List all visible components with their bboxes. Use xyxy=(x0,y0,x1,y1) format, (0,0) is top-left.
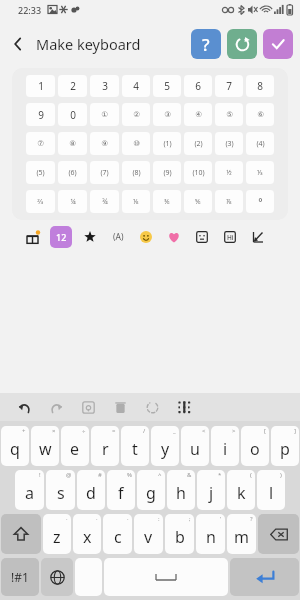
button[interactable]: × xyxy=(31,426,59,466)
button[interactable]: (4) xyxy=(246,132,274,155)
button[interactable]: : xyxy=(134,514,163,554)
button[interactable]: ③ xyxy=(153,103,181,126)
button[interactable]: · xyxy=(43,514,71,554)
button[interactable]: Lock xyxy=(78,397,98,417)
button[interactable]: ! xyxy=(15,470,44,510)
button[interactable]: [ xyxy=(241,426,269,466)
button[interactable]: (5) xyxy=(26,161,55,184)
button[interactable]: 4 xyxy=(122,75,150,97)
button[interactable]: 12 xyxy=(50,226,72,248)
button[interactable]: / xyxy=(121,426,149,466)
button[interactable]: 9 xyxy=(26,103,55,126)
button[interactable]: 7 xyxy=(215,75,243,97)
button[interactable]: · xyxy=(73,514,101,554)
button[interactable]: Redo xyxy=(46,397,66,417)
staticText: ° xyxy=(258,195,263,209)
button[interactable]: ④ xyxy=(184,103,212,126)
button[interactable]: Enter xyxy=(230,558,299,596)
button[interactable]: ⑦ xyxy=(26,132,55,155)
button[interactable]: (10) xyxy=(184,161,212,184)
button[interactable]: Delete xyxy=(110,397,130,417)
button[interactable]: ⅜ xyxy=(153,190,181,213)
button[interactable]: ; xyxy=(165,514,194,554)
button[interactable]: (1) xyxy=(153,132,181,155)
button[interactable]: % xyxy=(107,470,135,510)
button[interactable]: ) xyxy=(257,470,285,510)
staticText: ( xyxy=(250,471,252,479)
button[interactable]: 5 xyxy=(153,75,181,97)
button[interactable]: (6) xyxy=(58,161,87,184)
button[interactable]: ⅓ xyxy=(246,161,274,184)
button[interactable]: Favorites xyxy=(80,227,100,247)
button[interactable]: Text shortcuts xyxy=(220,227,240,247)
button[interactable]: Language xyxy=(41,558,73,596)
button[interactable]: 3 xyxy=(90,75,119,97)
button[interactable]: Emoji xyxy=(136,227,156,247)
button[interactable]: * xyxy=(197,470,225,510)
button[interactable]: ② xyxy=(122,103,150,126)
button[interactable]: = xyxy=(91,426,119,466)
button[interactable]: Backspace xyxy=(258,514,299,554)
button[interactable]: Kaomoji xyxy=(192,227,212,247)
button[interactable]: (2) xyxy=(184,132,212,155)
button[interactable]: Symbols xyxy=(248,227,268,247)
button[interactable]: ¼ xyxy=(58,190,87,213)
button[interactable]: 1 xyxy=(26,75,55,97)
button[interactable]: ° xyxy=(246,190,274,213)
button[interactable]: _ xyxy=(151,426,179,466)
button[interactable]: Reset xyxy=(227,29,257,59)
button[interactable]: (9) xyxy=(153,161,181,184)
button[interactable]: ' xyxy=(196,514,225,554)
button[interactable]: (8) xyxy=(122,161,150,184)
button[interactable]: ? xyxy=(227,514,256,554)
button[interactable]: @ xyxy=(46,470,75,510)
button[interactable]: (7) xyxy=(90,161,119,184)
button[interactable]: Shift xyxy=(1,514,41,554)
staticText: ! xyxy=(39,471,41,479)
button[interactable]: ⅝ xyxy=(184,190,212,213)
button[interactable]: ¾ xyxy=(90,190,119,213)
button[interactable]: ( xyxy=(227,470,255,510)
button[interactable]: Hearts xyxy=(164,227,184,247)
button[interactable]: Letters xyxy=(108,227,128,247)
button[interactable]: ⑨ xyxy=(90,132,119,155)
button[interactable]: Keypad xyxy=(174,397,194,417)
button[interactable]: Done xyxy=(263,29,293,59)
button[interactable]: + xyxy=(1,426,29,466)
button[interactable]: (3) xyxy=(215,132,243,155)
button[interactable]: ⅛ xyxy=(122,190,150,213)
staticText: ÷ xyxy=(82,427,86,435)
button[interactable]: ⑥ xyxy=(246,103,274,126)
button[interactable]: 2 xyxy=(58,75,87,97)
button[interactable]: Back xyxy=(0,26,36,62)
button[interactable]: 6 xyxy=(184,75,212,97)
button[interactable]: Undo xyxy=(14,397,34,417)
button[interactable]: 8 xyxy=(246,75,274,97)
button[interactable]: ⅔ xyxy=(26,190,55,213)
button[interactable]: < xyxy=(181,426,209,466)
button[interactable] xyxy=(75,558,102,596)
button[interactable]: Help xyxy=(191,29,221,59)
button[interactable]: ^ xyxy=(137,470,165,510)
staticText: i xyxy=(223,438,228,460)
button[interactable]: ] xyxy=(271,426,299,466)
button[interactable]: · xyxy=(103,514,132,554)
button[interactable]: ÷ xyxy=(61,426,89,466)
button[interactable]: !#1 xyxy=(1,558,39,596)
button[interactable]: ½ xyxy=(215,161,243,184)
button[interactable]: & xyxy=(167,470,195,510)
button[interactable]: > xyxy=(211,426,239,466)
button[interactable]: ① xyxy=(90,103,119,126)
button[interactable]: New xyxy=(22,227,42,247)
button[interactable]: # xyxy=(77,470,105,510)
button[interactable]: ⑩ xyxy=(122,132,150,155)
button[interactable]: Space xyxy=(104,558,228,596)
staticText: ) xyxy=(280,471,282,479)
button[interactable]: ⑧ xyxy=(58,132,87,155)
staticText: ^ xyxy=(158,471,162,479)
button[interactable]: Refresh xyxy=(142,397,162,417)
button[interactable]: ⑤ xyxy=(215,103,243,126)
button[interactable]: 0 xyxy=(58,103,87,126)
button[interactable]: ⅞ xyxy=(215,190,243,213)
staticText: k xyxy=(237,482,246,504)
